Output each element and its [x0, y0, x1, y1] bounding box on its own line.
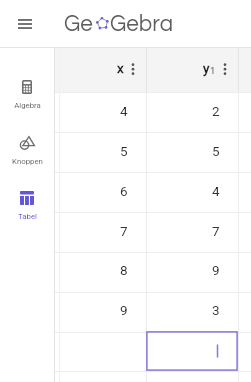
button[interactable]: 5	[145, 132, 237, 172]
staticText: 9	[212, 262, 220, 278]
staticText: Gebra	[110, 13, 174, 36]
staticText: Tabel	[18, 212, 37, 221]
staticText: 4	[120, 103, 128, 119]
staticText: Algebra	[14, 101, 41, 110]
button[interactable]: 9	[59, 291, 146, 331]
staticText: 5	[120, 143, 128, 159]
button[interactable]	[59, 371, 146, 382]
button[interactable]: y	[145, 48, 237, 92]
button[interactable]: 8	[59, 251, 146, 291]
button[interactable]: 5	[59, 132, 146, 172]
button[interactable]: 7	[145, 212, 237, 252]
staticText: y	[203, 60, 210, 76]
button[interactable]: Tabel	[0, 190, 54, 221]
staticText: 2	[212, 103, 220, 119]
staticText: Ge	[64, 13, 93, 36]
button[interactable]: 4	[145, 172, 237, 212]
button[interactable]	[59, 331, 146, 371]
button[interactable]: 2	[145, 92, 237, 132]
button[interactable]: 4	[59, 92, 146, 132]
button[interactable]: 3	[145, 291, 237, 331]
staticText: 9	[120, 302, 128, 318]
staticText: 4	[212, 183, 220, 199]
button[interactable]: Column menu	[219, 64, 231, 76]
button[interactable]	[145, 371, 237, 382]
button[interactable]: Knoppen	[0, 135, 54, 166]
staticText: 8	[120, 262, 128, 278]
button[interactable]: Column menu	[127, 64, 139, 76]
button[interactable]: Open menu	[8, 8, 41, 40]
button[interactable]: x	[59, 48, 146, 92]
button[interactable]: 7	[59, 212, 146, 252]
staticText: Knoppen	[12, 157, 43, 166]
staticText: 5	[212, 143, 220, 159]
staticText: 7	[212, 223, 220, 239]
button[interactable]: 9	[145, 251, 237, 291]
staticText: x	[117, 60, 124, 76]
button[interactable]: Algebra	[0, 79, 54, 110]
staticText: 1	[210, 65, 216, 76]
staticText: 3	[212, 302, 220, 318]
staticText: 6	[120, 183, 128, 199]
staticText: 7	[120, 223, 128, 239]
button[interactable]: 6	[59, 172, 146, 212]
button[interactable]	[145, 331, 237, 371]
button[interactable]: Selected cell, editing	[146, 331, 238, 371]
